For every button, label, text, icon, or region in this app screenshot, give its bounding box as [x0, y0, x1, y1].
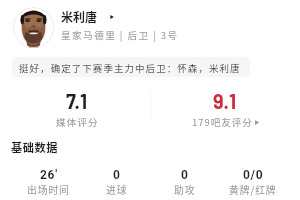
staticText: 米利唐	[61, 8, 98, 25]
staticText: 挺好，确定了下赛季主力中后卫：怀森，米利唐	[19, 61, 241, 75]
staticText: 皇家马德里 | 后卫 | 3号	[61, 28, 179, 42]
staticText: 0	[113, 168, 121, 182]
button[interactable]: 26'	[14, 168, 83, 197]
button[interactable]: 0	[151, 168, 219, 197]
staticText: 26'	[40, 168, 58, 182]
button[interactable]: 挺好，确定了下赛季主力中后卫：怀森，米利唐	[12, 57, 250, 77]
staticText: 出场时间	[27, 183, 70, 197]
staticText: 0	[181, 168, 189, 182]
staticText: 助攻	[174, 183, 196, 197]
staticText: 0/0	[243, 168, 264, 182]
button[interactable]: 0/0	[219, 168, 287, 197]
staticText: 7.1	[66, 89, 88, 113]
button[interactable]: 米利唐	[61, 8, 114, 25]
button[interactable]: 9.1	[150, 89, 300, 129]
button[interactable]: Player photo	[13, 7, 54, 48]
staticText: 179吧友评分	[192, 115, 253, 129]
staticText: 9.1	[213, 89, 237, 113]
button[interactable]: 7.1	[2, 89, 152, 129]
staticText: 基础数据	[11, 139, 59, 155]
button[interactable]: 0	[83, 168, 151, 197]
staticText: 黄牌/红牌	[229, 183, 277, 197]
staticText: 进球	[106, 183, 128, 197]
staticText: 媒体评分	[56, 115, 99, 129]
